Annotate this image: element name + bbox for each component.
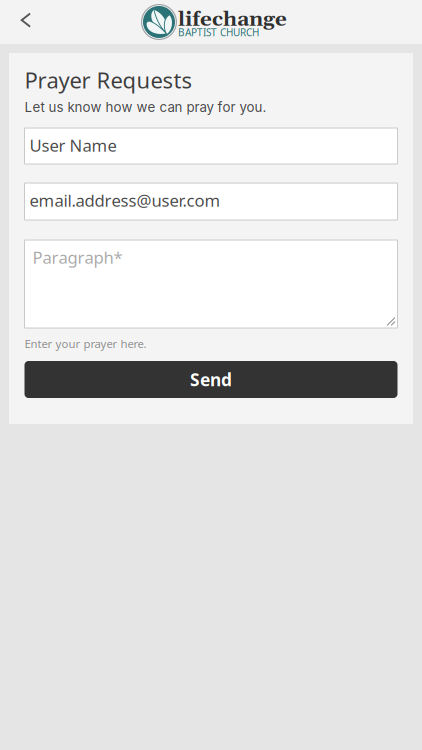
- staticText: User Name: [29, 134, 116, 157]
- staticText: Let us know how we can pray for you.: [24, 99, 266, 115]
- staticText: Paragraph*: [32, 246, 122, 269]
- staticText: lifechange: [178, 6, 287, 33]
- staticText: Enter your prayer here.: [24, 336, 146, 351]
- staticText: Send: [190, 368, 232, 391]
- button[interactable]: Back: [5, 1, 47, 43]
- staticText: BAPTIST CHURCH: [178, 25, 259, 39]
- button[interactable]: Send: [24, 361, 397, 398]
- button[interactable]: email.address@user.com: [24, 183, 397, 220]
- button[interactable]: Paragraph*: [24, 240, 397, 328]
- staticText: Prayer Requests: [24, 65, 192, 95]
- staticText: email.address@user.com: [29, 189, 220, 212]
- button[interactable]: User Name: [24, 128, 397, 164]
